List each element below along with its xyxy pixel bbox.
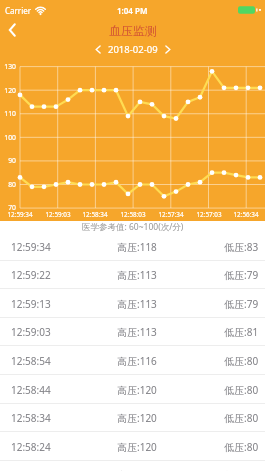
staticText: 100 [0,133,16,142]
staticText: 90 [0,156,16,165]
staticText: 130 [0,62,16,71]
staticText: 12:58:24 [11,440,51,454]
staticText: 12:57:03 [191,210,227,219]
staticText: 高压:116 [117,354,157,368]
staticText: 高压:113 [117,268,157,282]
staticText: 12:59:03 [11,325,51,339]
button[interactable]: 12:59:34 [0,232,265,261]
button[interactable]: 12:59:03 [0,317,265,346]
button[interactable]: 12:58:54 [0,346,265,375]
button[interactable]: 12:59:22 [0,260,265,289]
button[interactable]: 12:59:13 [0,289,265,318]
staticText: 高压:120 [117,440,157,454]
staticText: 高压:113 [117,297,157,311]
staticText: 2018-02-09 [108,43,158,56]
staticText: 12:58:03 [115,210,151,219]
staticText: 高压:120 [117,411,157,425]
staticText: 高压:118 [117,240,157,254]
staticText: 低压:81 [224,325,259,339]
staticText: 高压:120 [117,383,157,397]
staticText: 12:56:34 [228,210,264,219]
button[interactable]: 12:58:24 [0,432,265,461]
staticText: 高压:113 [117,325,157,339]
staticText: 12:59:03 [40,210,76,219]
staticText: 110 [0,109,16,118]
staticText: 12:58:54 [11,354,51,368]
staticText: 低压:79 [224,297,259,311]
staticText: 12:58:44 [11,383,51,397]
staticText: 低压:83 [224,240,259,254]
button[interactable]: 12:58:44 [0,375,265,404]
staticText: 血压监测 [109,23,157,38]
button[interactable] [4,21,22,39]
staticText: 低压:80 [224,354,259,368]
button[interactable]: 12:58:14 [0,460,265,471]
staticText: 低压:80 [224,383,259,397]
staticText: 低压:80 [224,440,259,454]
staticText: 12:58:34 [77,210,113,219]
staticText: 12:59:13 [11,297,51,311]
staticText: 低压:79 [224,268,259,282]
staticText: 1:04 PM [117,5,148,16]
staticText: 120 [0,86,16,95]
button[interactable]: 12:58:34 [0,403,265,432]
staticText: 12:58:34 [11,411,51,425]
staticText: 低压:80 [224,411,259,425]
staticText: 70 [0,203,16,212]
staticText: 80 [0,180,16,189]
staticText: 12:59:34 [2,210,38,219]
staticText: Carrier [5,5,32,16]
staticText: 12:57:34 [153,210,189,219]
staticText: 医学参考值: 60~100(次/分) [82,221,184,232]
staticText: 12:59:34 [11,240,51,254]
button[interactable]: 2018-02-09 [0,42,265,56]
staticText: 12:59:22 [11,268,51,282]
